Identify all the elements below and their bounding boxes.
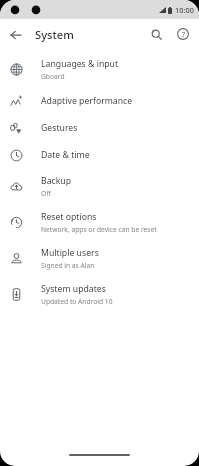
button[interactable]: Adaptive performance	[0, 87, 199, 114]
staticText: Network, apps or device can be reset	[41, 225, 157, 234]
button[interactable]: Multiple users	[0, 240, 199, 276]
button[interactable]: System updates	[0, 276, 199, 312]
staticText: Updated to Android 10	[41, 297, 113, 306]
button[interactable]: Home	[69, 454, 130, 456]
staticText: Reset options	[41, 211, 97, 223]
staticText: 10:00	[175, 5, 194, 15]
button[interactable]: Reset options	[0, 204, 199, 240]
button[interactable]: Date & time	[0, 141, 199, 168]
button[interactable]: Help	[171, 22, 195, 46]
button[interactable]: Backup	[0, 168, 199, 204]
staticText: System	[35, 27, 74, 42]
button[interactable]: Languages & input	[0, 51, 199, 87]
staticText: Multiple users	[41, 247, 99, 259]
button[interactable]: Gestures	[0, 114, 199, 141]
staticText: Signed in as Alan	[41, 261, 95, 270]
staticText: Gboard	[41, 72, 65, 81]
staticText: Adaptive performance	[41, 95, 133, 107]
staticText: Date & time	[41, 149, 90, 161]
staticText: ?	[182, 30, 185, 39]
button[interactable]: Back	[4, 23, 27, 46]
staticText: Gestures	[41, 122, 78, 134]
staticText: Backup	[41, 175, 72, 187]
button[interactable]: Search	[144, 22, 168, 46]
staticText: System updates	[41, 283, 106, 295]
staticText: Off	[41, 189, 51, 198]
staticText: Languages & input	[41, 58, 119, 70]
